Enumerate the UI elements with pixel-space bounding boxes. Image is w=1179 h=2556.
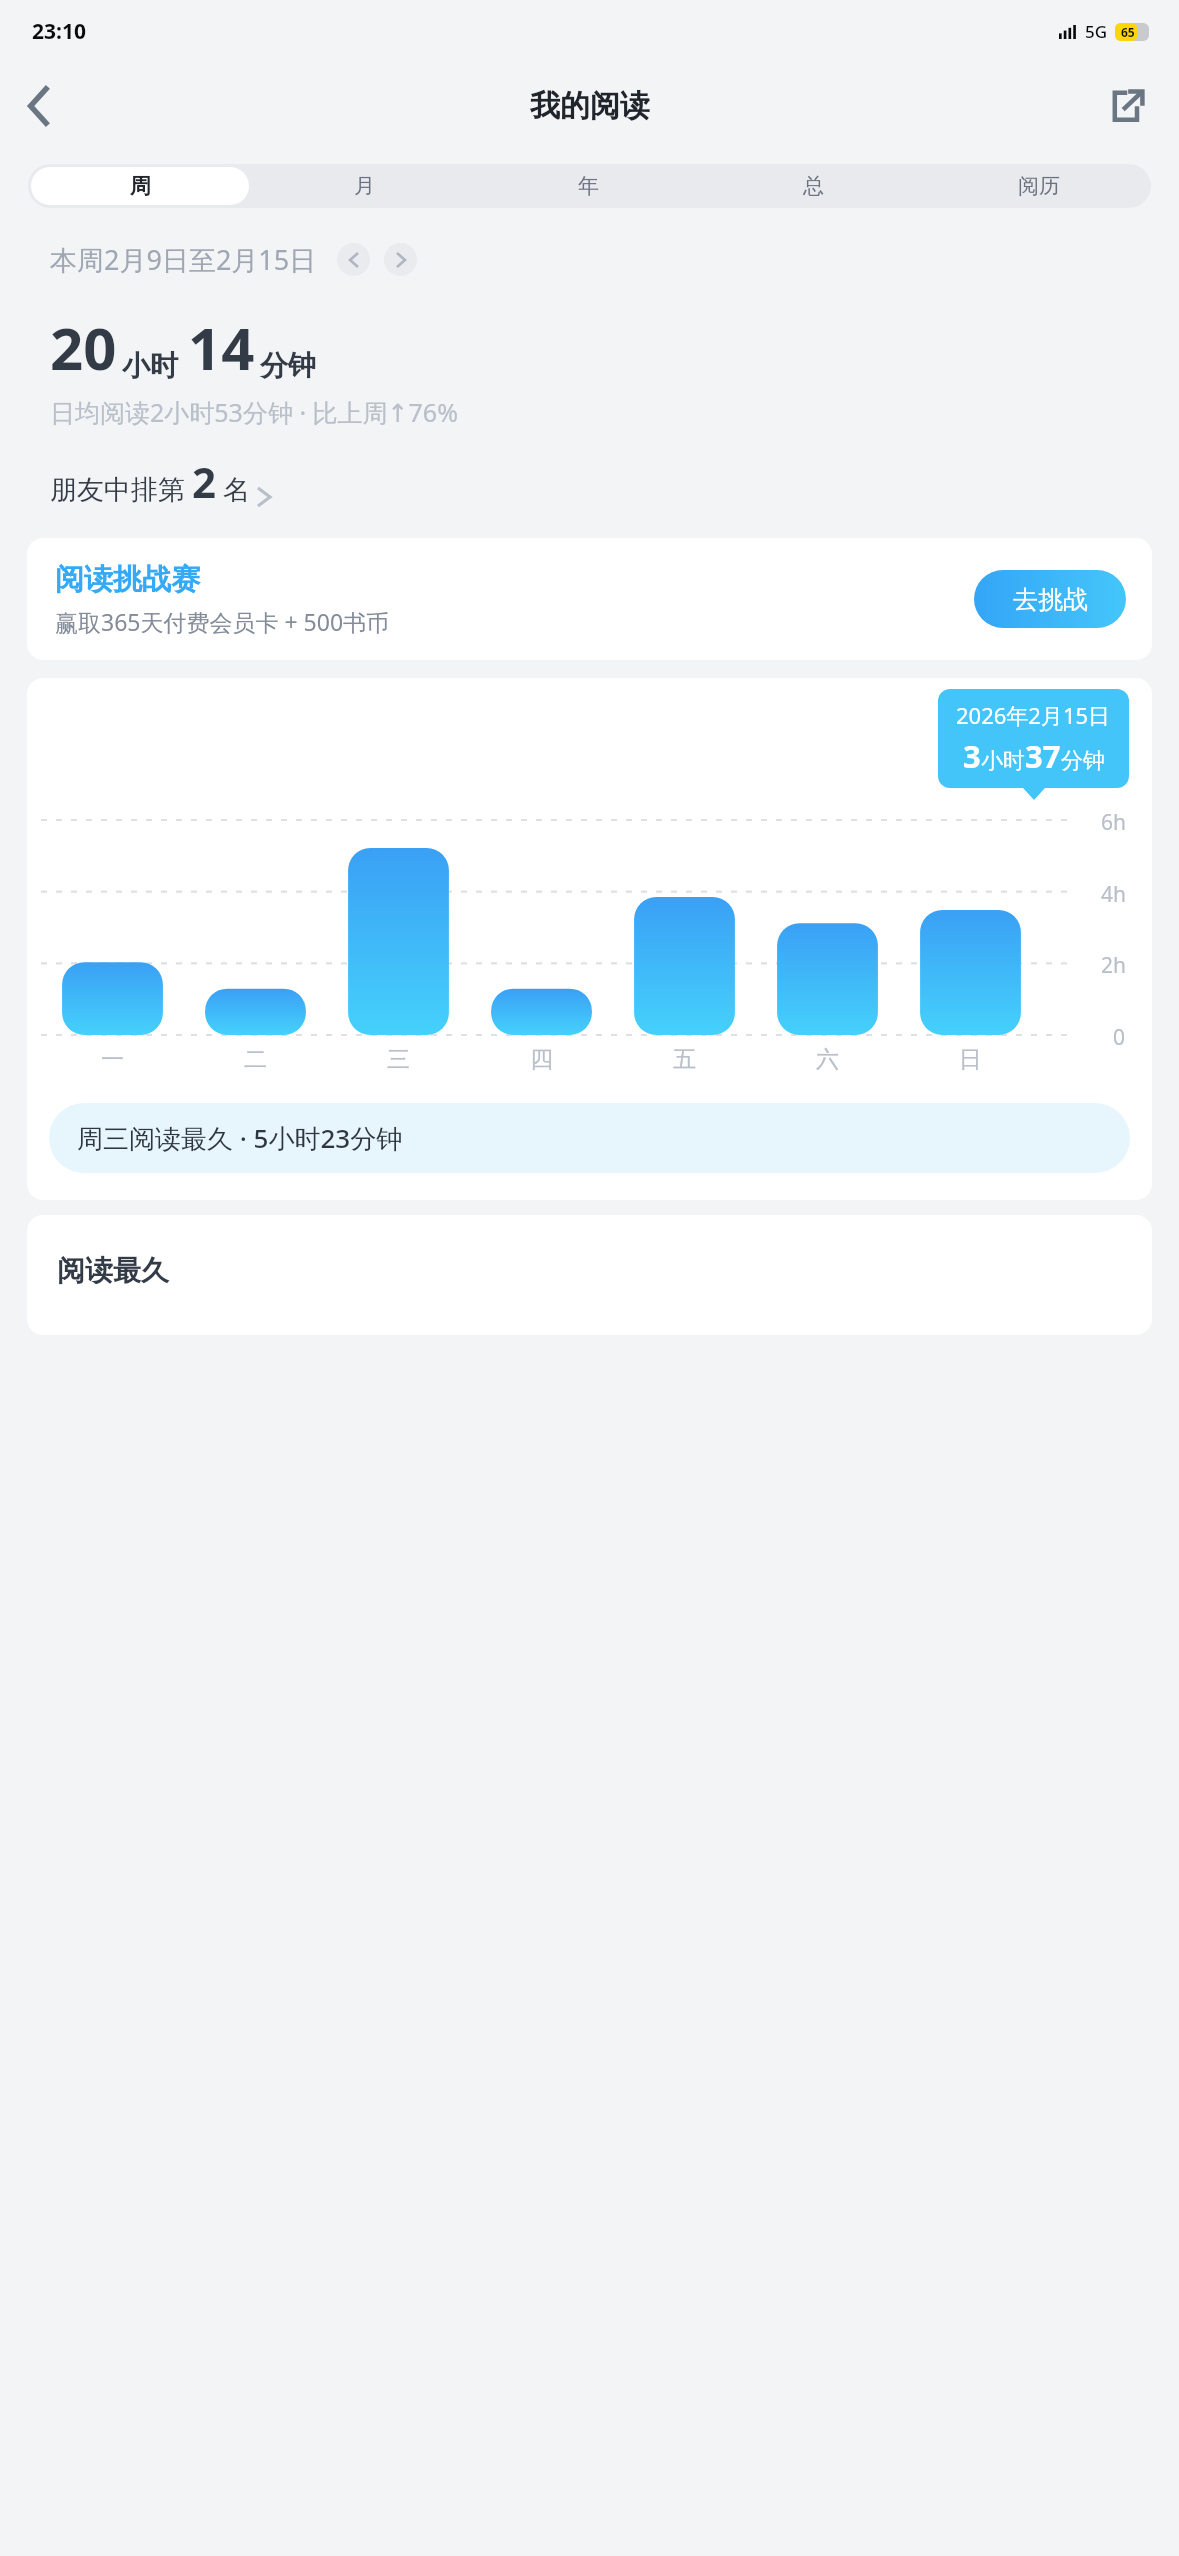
staticText: 分钟 [260, 348, 316, 383]
button[interactable]: 去挑战 [974, 570, 1126, 628]
staticText: 二 [244, 1045, 267, 1074]
staticText: 月 [354, 173, 375, 199]
button[interactable]: 阅历 [929, 167, 1148, 205]
staticText: 6h [1101, 808, 1126, 837]
staticText: 名 [223, 473, 250, 507]
staticText: 37 [1025, 735, 1061, 777]
staticText: 阅读挑战赛 [55, 561, 200, 598]
staticText: 周三阅读最久 · 5小时23分钟 [77, 1120, 403, 1156]
staticText: 周 [130, 173, 151, 199]
staticText: 朋友中排第 [50, 473, 185, 507]
staticText: 5G [1085, 20, 1108, 43]
staticText: 一 [101, 1045, 124, 1074]
staticText: 六 [816, 1045, 839, 1074]
staticText: 0 [1113, 1023, 1126, 1052]
staticText: 本周2月9日至2月15日 [50, 241, 317, 278]
staticText: 2 [192, 453, 217, 510]
staticText: 65 [1121, 24, 1135, 40]
button[interactable]: Previous week [337, 243, 370, 276]
button[interactable]: Next week [384, 243, 417, 276]
button[interactable]: Back [10, 77, 68, 135]
staticText: 赢取365天付费会员卡 + 500书币 [55, 606, 390, 637]
staticText: 14 [188, 308, 255, 387]
staticText: 20 [50, 308, 117, 387]
button[interactable]: 周三阅读最久 · 5小时23分钟 [49, 1103, 1130, 1173]
button[interactable]: 朋友中排第 [50, 453, 270, 510]
staticText: 3 [963, 735, 981, 777]
staticText: 2026年2月15日 [956, 700, 1111, 730]
staticText: 23:10 [32, 17, 86, 46]
staticText: 阅读最久 [57, 1253, 169, 1288]
button[interactable]: Share [1099, 77, 1157, 135]
staticText: 日 [959, 1045, 982, 1074]
staticText: 年 [578, 173, 599, 199]
staticText: 三 [387, 1045, 410, 1074]
staticText: 小时 [122, 348, 178, 383]
staticText: 2h [1101, 951, 1126, 980]
staticText: 我的阅读 [530, 87, 650, 125]
button[interactable]: 阅读最久 [27, 1215, 1152, 1335]
staticText: 日均阅读2小时53分钟 · 比上周↑76% [50, 395, 458, 429]
button[interactable]: 月 [255, 167, 473, 205]
staticText: 五 [673, 1045, 696, 1074]
staticText: 四 [530, 1045, 553, 1074]
staticText: 去挑战 [1013, 584, 1088, 615]
button[interactable]: 阅读挑战赛 [27, 538, 1152, 660]
button[interactable]: 总 [704, 167, 923, 205]
staticText: 总 [803, 173, 824, 199]
button[interactable]: 周 [31, 167, 249, 205]
button[interactable]: 年 [479, 167, 698, 205]
staticText: 阅历 [1018, 173, 1060, 199]
staticText: 分钟 [1061, 747, 1105, 775]
staticText: 4h [1101, 880, 1126, 909]
staticText: 小时 [981, 747, 1025, 775]
